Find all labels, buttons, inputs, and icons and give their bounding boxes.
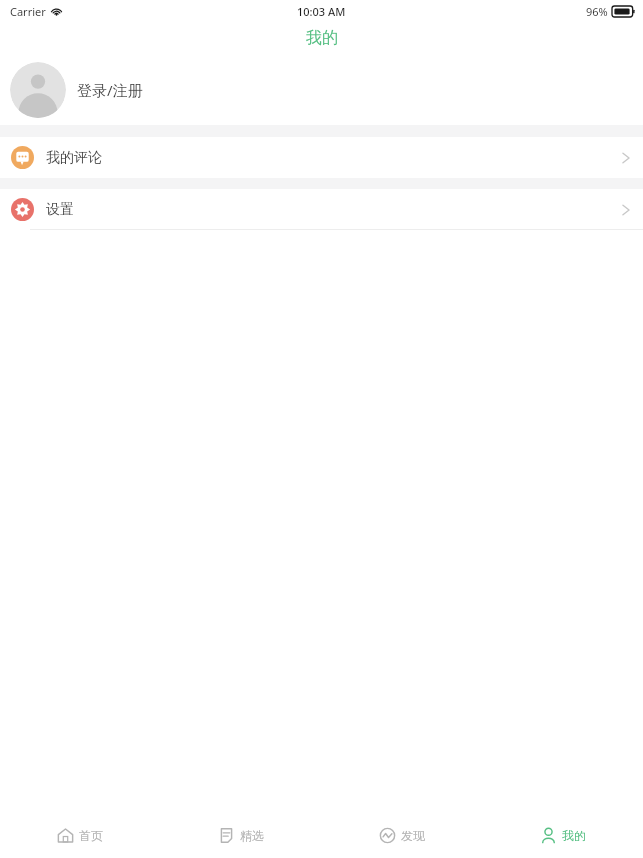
staticText: 设置 [46,201,74,219]
staticText: 我的评论 [46,149,102,167]
staticText: 96% [586,4,608,19]
button[interactable]: 我的 [482,812,643,858]
button[interactable]: 首页 [0,812,160,858]
staticText: Carrier [10,4,46,19]
staticText: 精选 [240,828,264,843]
staticText: 首页 [79,828,103,843]
staticText: 登录/注册 [77,80,143,100]
button[interactable]: 发现 [321,812,482,858]
button[interactable]: 精选 [160,812,321,858]
staticText: 我的 [306,28,338,48]
button[interactable]: 设置 [0,189,643,230]
staticText: 发现 [401,828,425,843]
staticText: 我的 [562,828,586,843]
button[interactable]: 我的评论 [0,137,643,178]
staticText: 10:03 AM [297,4,346,19]
button[interactable]: 登录/注册 [0,54,643,125]
